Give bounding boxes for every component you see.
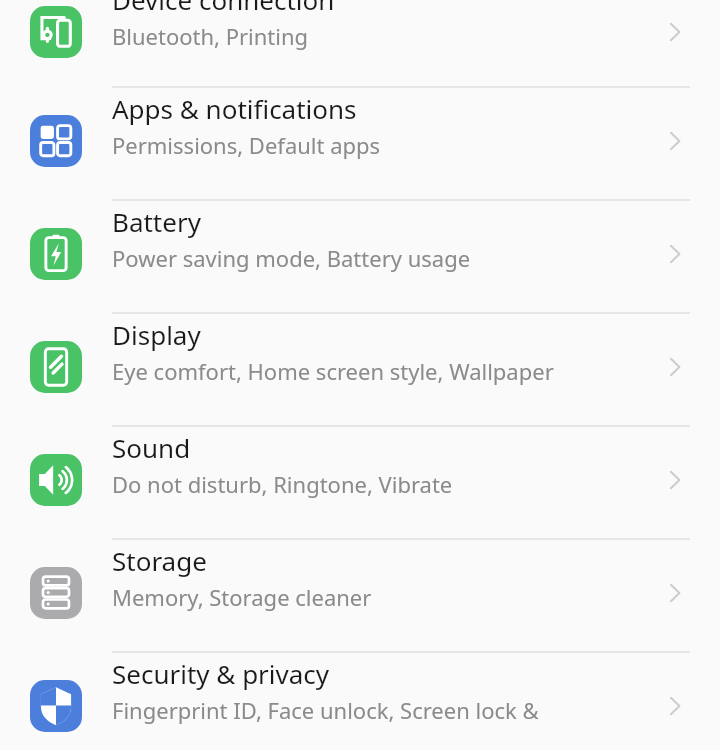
staticText: Battery bbox=[112, 204, 201, 239]
button[interactable]: Display bbox=[0, 314, 720, 425]
staticText: Eye comfort, Home screen style, Wallpape… bbox=[112, 356, 554, 386]
button[interactable]: Battery bbox=[0, 201, 720, 312]
staticText: Bluetooth, Printing bbox=[112, 21, 309, 51]
button[interactable]: Device connection bbox=[0, 0, 720, 86]
staticText: Permissions, Default apps bbox=[112, 130, 381, 160]
other: Storage bbox=[658, 576, 692, 610]
button[interactable]: Security & privacy bbox=[0, 653, 720, 750]
other: Apps & notifications bbox=[658, 124, 692, 158]
staticText: Device connection bbox=[112, 0, 335, 17]
button[interactable]: Sound bbox=[0, 427, 720, 538]
other: Sound bbox=[658, 463, 692, 497]
staticText: Sound bbox=[112, 430, 191, 465]
staticText: Power saving mode, Battery usage bbox=[112, 243, 471, 273]
other: Display bbox=[658, 350, 692, 384]
other: Security & privacy bbox=[658, 689, 692, 723]
staticText: Storage bbox=[112, 543, 207, 578]
staticText: Do not disturb, Ringtone, Vibrate bbox=[112, 469, 453, 499]
staticText: Display bbox=[112, 317, 201, 352]
other: Battery bbox=[658, 237, 692, 271]
staticText: Security & privacy bbox=[112, 656, 330, 691]
staticText: Fingerprint ID, Face unlock, Screen lock… bbox=[112, 695, 539, 725]
button[interactable]: Apps & notifications bbox=[0, 88, 720, 199]
staticText: Apps & notifications bbox=[112, 91, 357, 126]
staticText: Memory, Storage cleaner bbox=[112, 582, 372, 612]
button[interactable]: Storage bbox=[0, 540, 720, 651]
other: Device connection bbox=[658, 15, 692, 49]
